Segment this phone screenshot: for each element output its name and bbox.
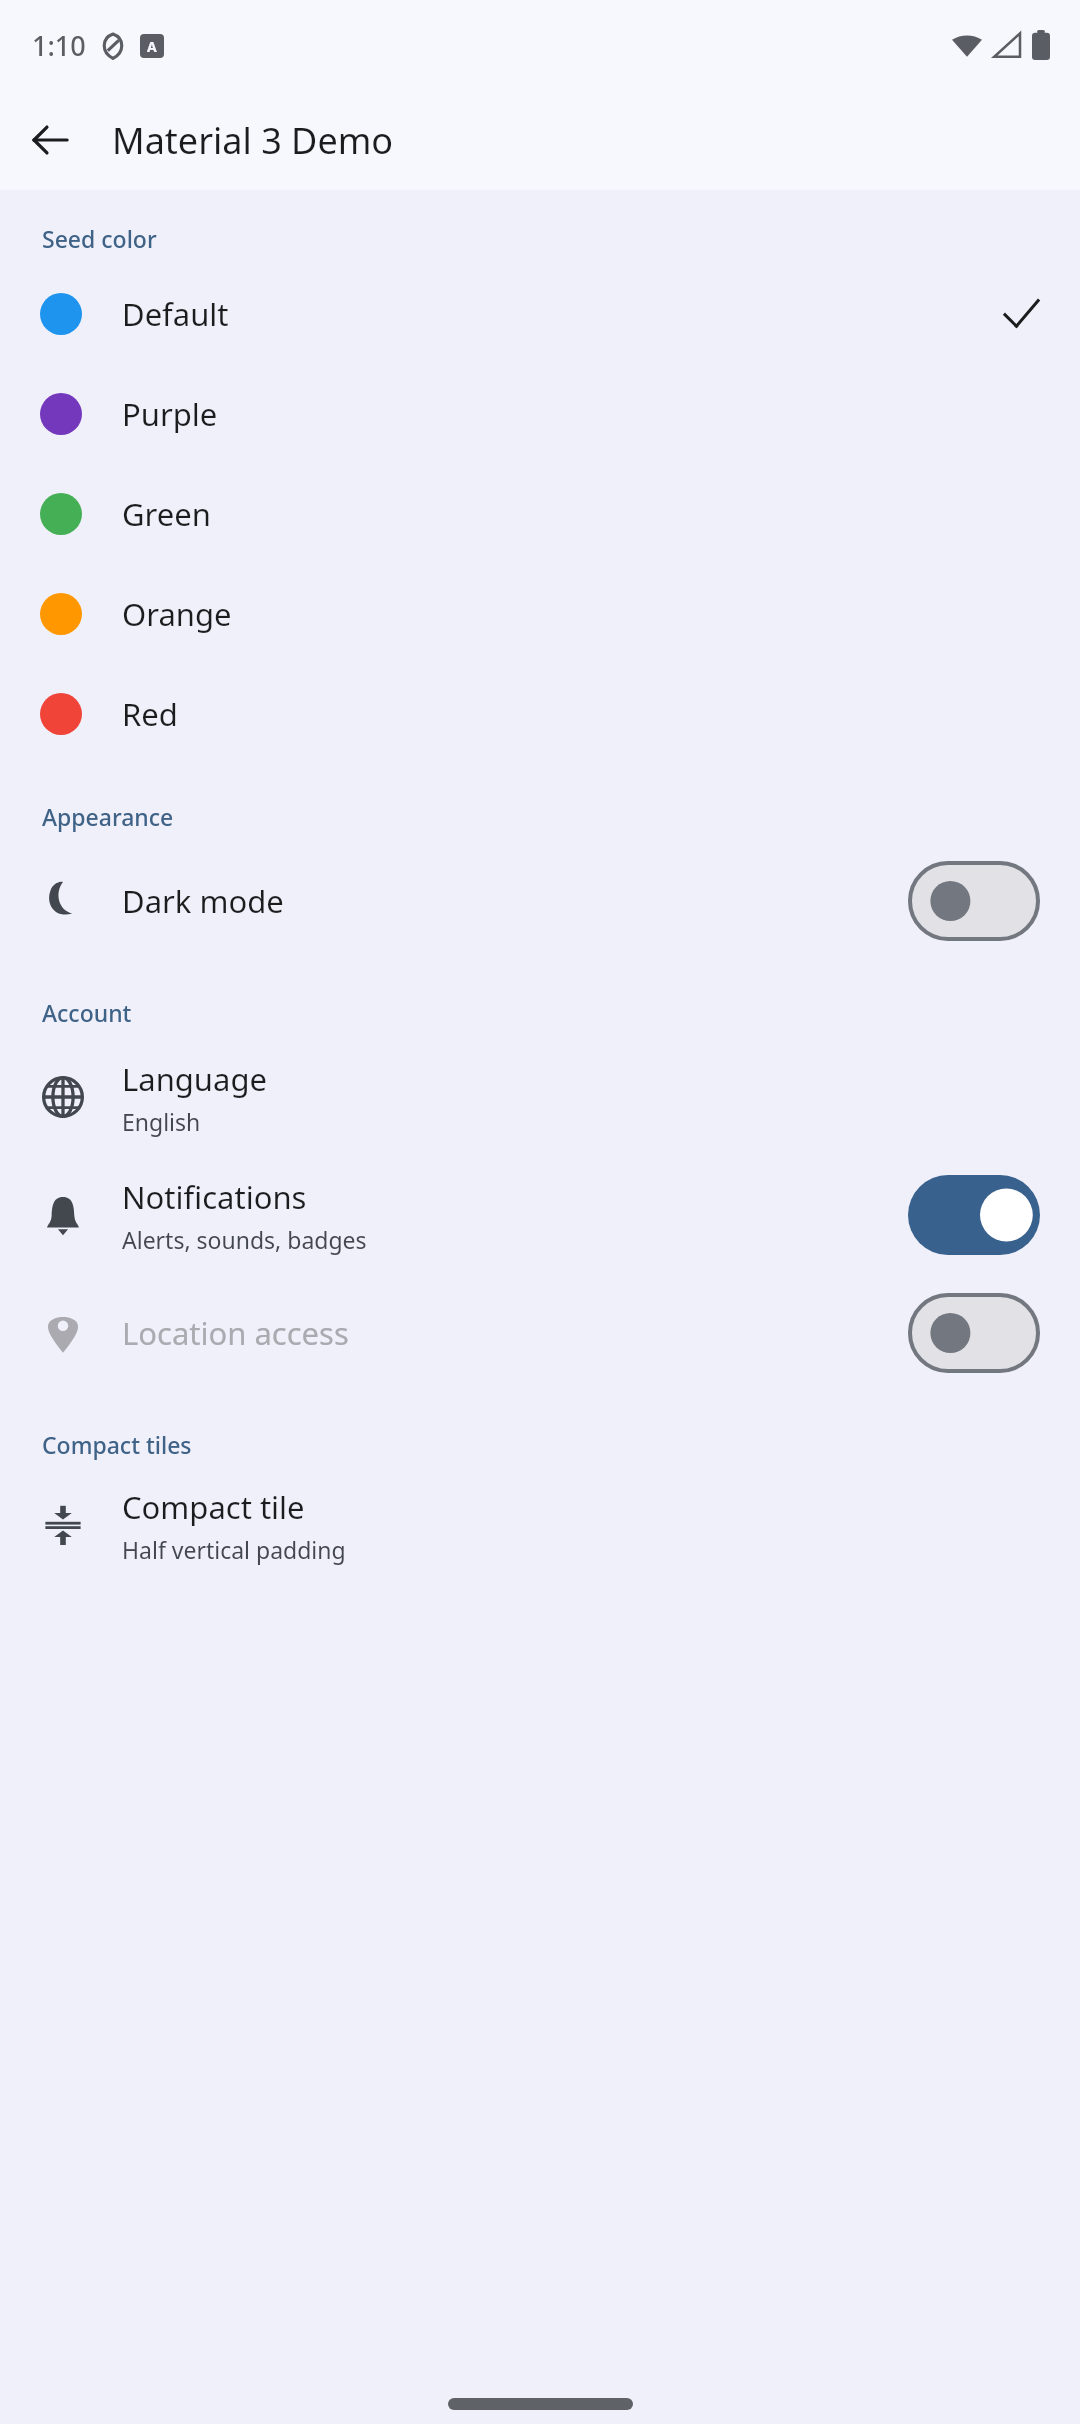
staticText: 1:10 [32, 27, 86, 64]
button[interactable]: Red [0, 664, 1080, 764]
staticText: Language [122, 1058, 267, 1100]
staticText: A [147, 37, 157, 56]
staticText: Seed color [42, 223, 157, 254]
staticText: Purple [122, 393, 218, 435]
staticText: Notifications [122, 1176, 307, 1218]
button[interactable]: Compact tile [0, 1470, 1080, 1580]
staticText: Appearance [42, 801, 174, 832]
staticText: Dark mode [122, 880, 284, 922]
staticText: English [122, 1106, 201, 1137]
button[interactable]: Language [0, 1038, 1080, 1156]
button[interactable]: On [908, 1175, 1040, 1255]
staticText: Orange [122, 593, 232, 635]
button[interactable]: Back [14, 104, 86, 176]
staticText: Location access [122, 1312, 349, 1354]
button[interactable]: Green [0, 464, 1080, 564]
button[interactable]: Off [908, 1293, 1040, 1373]
button[interactable]: Orange [0, 564, 1080, 664]
button[interactable]: Location access [0, 1274, 1080, 1392]
staticText: Red [122, 693, 178, 735]
button[interactable]: Off [908, 861, 1040, 941]
staticText: Account [42, 997, 132, 1028]
button[interactable]: Dark mode [0, 842, 1080, 960]
staticText: Half vertical padding [122, 1534, 346, 1565]
button[interactable]: Default [0, 264, 1080, 364]
button[interactable]: Notifications [0, 1156, 1080, 1274]
staticText: Compact tile [122, 1486, 305, 1528]
staticText: Alerts, sounds, badges [122, 1224, 367, 1255]
staticText: Compact tiles [42, 1429, 192, 1460]
button[interactable]: Purple [0, 364, 1080, 464]
staticText: Material 3 Demo [112, 116, 394, 165]
staticText: Default [122, 293, 229, 335]
staticText: Green [122, 493, 211, 535]
